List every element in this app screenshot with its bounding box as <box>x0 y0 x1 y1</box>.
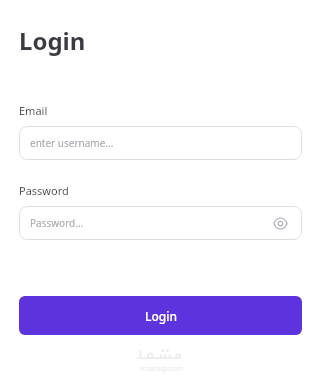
staticText: Password <box>19 183 69 198</box>
staticText: Login <box>19 24 86 57</box>
button[interactable]: Login <box>19 296 302 335</box>
button[interactable]: enter username... <box>19 126 302 160</box>
button[interactable]: Password... <box>19 206 302 240</box>
staticText: Email <box>19 103 48 118</box>
staticText: enter username... <box>30 136 114 150</box>
staticText: Login <box>145 308 177 324</box>
button[interactable]: Show password <box>269 212 291 234</box>
staticText: Password... <box>30 216 84 230</box>
staticText: mostaql.com <box>140 364 183 374</box>
